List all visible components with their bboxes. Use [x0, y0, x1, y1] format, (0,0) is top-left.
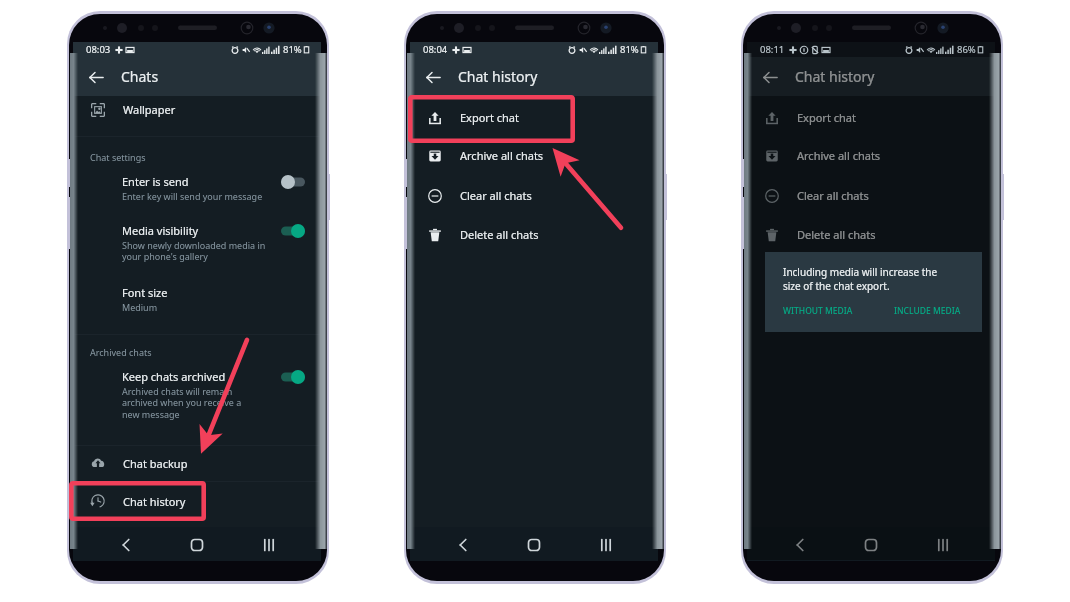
- button[interactable]: Export chat: [410, 98, 658, 137]
- staticText: Chats: [121, 67, 159, 86]
- staticText: Enter key will send your message: [122, 190, 263, 202]
- staticText: Keep chats archived: [122, 369, 226, 384]
- staticText: Export chat: [797, 110, 856, 125]
- button[interactable]: Media visibility: [73, 215, 321, 271]
- staticText: Delete all chats: [460, 227, 539, 242]
- button[interactable]: Back: [444, 530, 482, 559]
- button[interactable]: Archive all chats: [410, 136, 658, 175]
- staticText: Chat backup: [123, 456, 188, 471]
- button[interactable]: Back: [83, 64, 109, 90]
- button[interactable]: Export chat: [747, 98, 995, 137]
- button[interactable]: Toggle off: [278, 173, 308, 191]
- button[interactable]: Toggle on: [278, 368, 308, 386]
- staticText: Clear all chats: [460, 188, 532, 203]
- button[interactable]: Clear all chats: [410, 176, 658, 215]
- staticText: WITHOUT MEDIA: [783, 305, 853, 317]
- button[interactable]: Delete all chats: [410, 215, 658, 254]
- staticText: Media visibility: [122, 223, 199, 238]
- staticText: Including media will increase the size o…: [783, 265, 938, 293]
- staticText: 08:03: [86, 43, 111, 56]
- staticText: Export chat: [460, 110, 519, 125]
- button[interactable]: INCLUDE MEDIA: [890, 301, 965, 321]
- button[interactable]: Chat backup: [73, 444, 321, 482]
- staticText: 81%: [283, 43, 302, 56]
- staticText: Archived chats will remain archived when…: [122, 385, 242, 421]
- button[interactable]: Delete all chats: [747, 215, 995, 254]
- button[interactable]: Archive all chats: [747, 136, 995, 175]
- staticText: Enter is send: [122, 174, 189, 189]
- button[interactable]: Home: [515, 530, 553, 559]
- staticText: 08:04: [423, 43, 448, 56]
- staticText: Show newly downloaded media in your phon…: [122, 239, 266, 263]
- staticText: Chat history: [795, 67, 875, 86]
- staticText: Medium: [122, 301, 158, 313]
- staticText: Archived chats: [90, 346, 152, 358]
- staticText: Chat settings: [90, 151, 146, 163]
- button[interactable]: Recent apps: [587, 530, 625, 559]
- staticText: Chat history: [123, 494, 186, 509]
- staticText: Archive all chats: [460, 148, 544, 163]
- button[interactable]: Keep chats archived: [73, 361, 321, 429]
- button[interactable]: Home: [178, 530, 216, 559]
- button[interactable]: Home: [852, 530, 890, 559]
- button[interactable]: Enter is send: [73, 166, 321, 210]
- button[interactable]: Toggle on: [278, 222, 308, 240]
- staticText: Chat history: [458, 67, 538, 86]
- button[interactable]: Recent apps: [924, 530, 962, 559]
- staticText: 81%: [620, 43, 639, 56]
- staticText: Archive all chats: [797, 148, 881, 163]
- staticText: Clear all chats: [797, 188, 869, 203]
- button[interactable]: Recent apps: [250, 530, 288, 559]
- button[interactable]: Back: [107, 530, 145, 559]
- button[interactable]: Chat history: [73, 482, 321, 520]
- button[interactable]: Clear all chats: [747, 176, 995, 215]
- button[interactable]: Font size: [73, 277, 321, 321]
- button[interactable]: Back: [757, 64, 783, 90]
- staticText: INCLUDE MEDIA: [894, 305, 961, 317]
- staticText: 08:11: [760, 43, 785, 56]
- staticText: Font size: [122, 285, 168, 300]
- button[interactable]: Wallpaper: [73, 90, 321, 129]
- staticText: Delete all chats: [797, 227, 876, 242]
- staticText: 86%: [957, 43, 976, 56]
- button[interactable]: WITHOUT MEDIA: [779, 301, 857, 321]
- button[interactable]: Back: [781, 530, 819, 559]
- button[interactable]: Back: [420, 64, 446, 90]
- staticText: Wallpaper: [123, 102, 176, 117]
